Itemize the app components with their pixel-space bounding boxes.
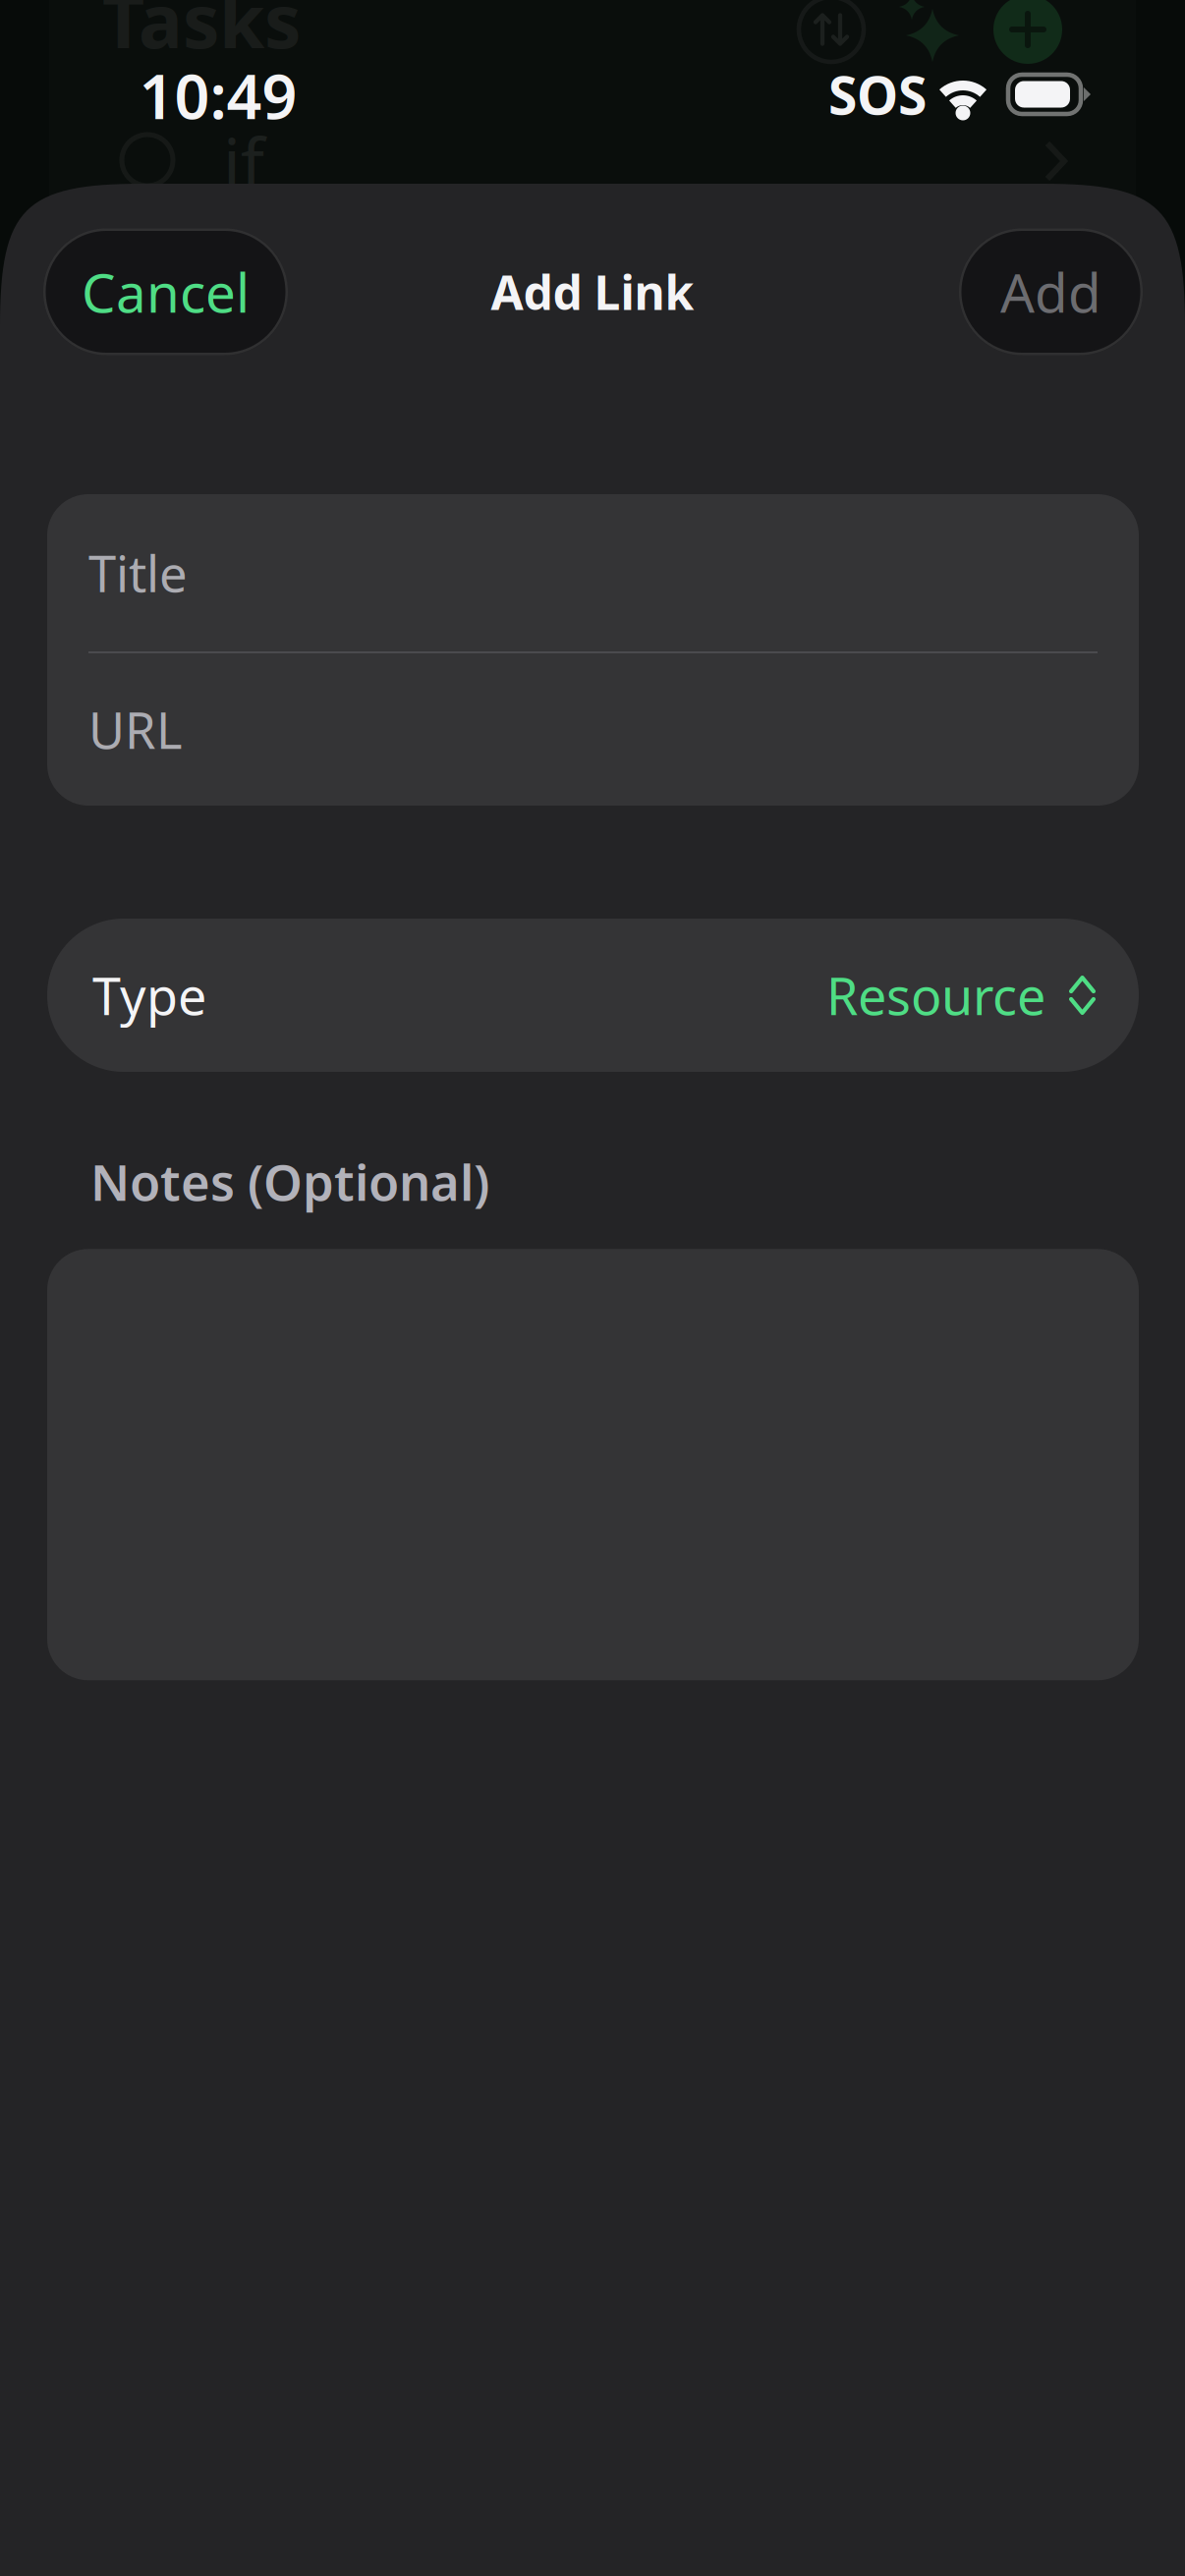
staticText: URL: [88, 696, 183, 763]
staticText: Cancel: [82, 256, 250, 327]
staticText: SOS: [828, 60, 927, 129]
staticText: Add: [1000, 256, 1101, 327]
staticText: Tasks: [102, 0, 301, 68]
button[interactable]: Cancel: [43, 228, 288, 355]
staticText: Title: [88, 540, 188, 606]
staticText: Resource: [826, 961, 1045, 1029]
staticText: Notes (Optional): [90, 1148, 489, 1215]
staticText: Add Link: [491, 260, 694, 323]
staticText: Type: [92, 961, 206, 1029]
button[interactable]: Add: [959, 228, 1143, 355]
staticText: 10:49: [139, 54, 297, 136]
button[interactable]: Type: [0, 919, 1185, 1072]
staticText: jf: [223, 116, 264, 206]
